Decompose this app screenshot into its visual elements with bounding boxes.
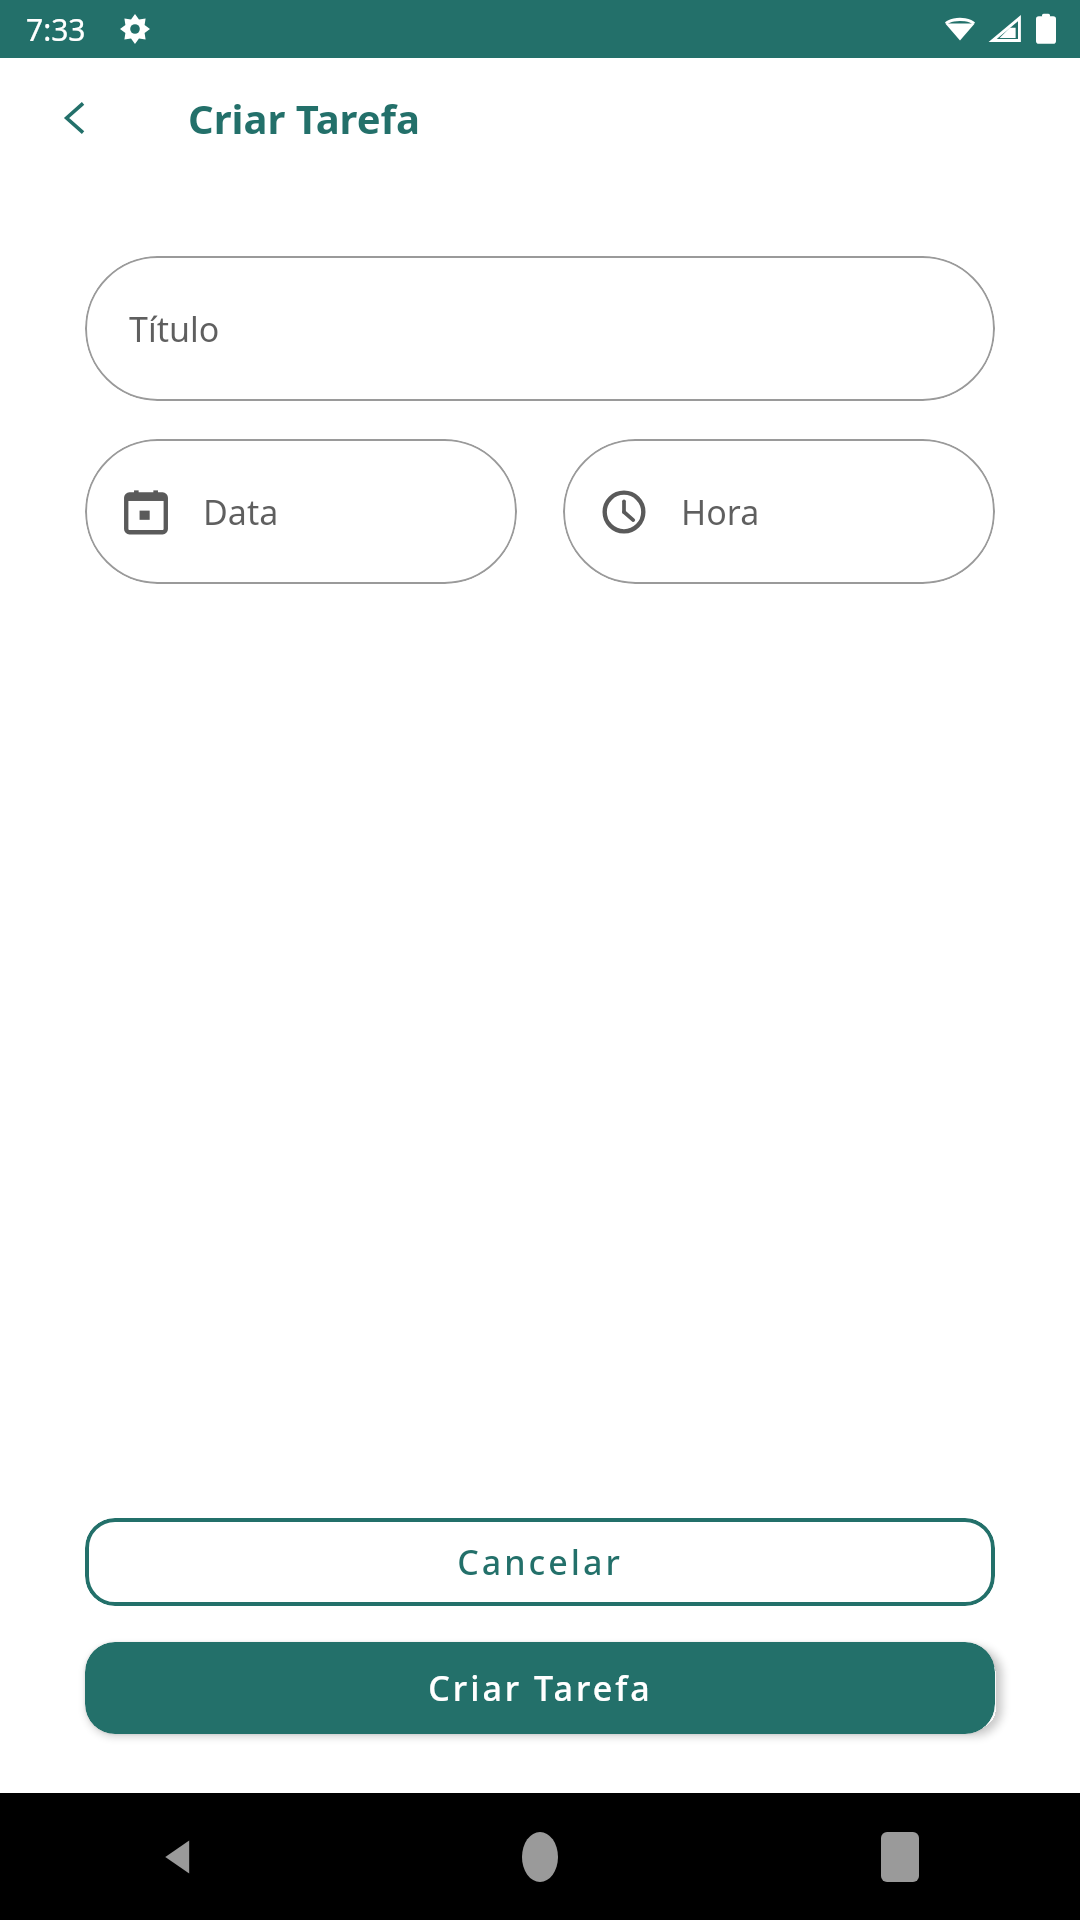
button[interactable]: Título [85, 256, 995, 401]
staticText: 7:33 [26, 9, 86, 50]
button[interactable]: Data [85, 439, 517, 584]
staticText: Data [203, 489, 279, 535]
staticText: Criar Tarefa [428, 1665, 653, 1711]
button[interactable]: Voltar [44, 87, 106, 149]
button[interactable]: Cancelar [85, 1518, 995, 1606]
button[interactable]: Back [0, 1793, 360, 1920]
button[interactable]: Recents [720, 1793, 1080, 1920]
button[interactable]: Criar Tarefa [85, 1642, 995, 1734]
button[interactable]: Hora [563, 439, 995, 584]
staticText: Título [129, 306, 220, 352]
staticText: Criar Tarefa [188, 91, 420, 145]
button[interactable]: Home [360, 1793, 720, 1920]
staticText: Cancelar [457, 1539, 623, 1585]
staticText: Hora [681, 489, 760, 535]
